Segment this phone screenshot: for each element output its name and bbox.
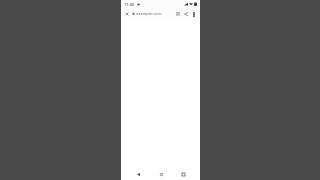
button[interactable]: Recent apps <box>178 169 188 179</box>
button[interactable]: More options <box>190 10 198 18</box>
staticText: 11:06 <box>124 2 135 7</box>
button[interactable]: Share <box>182 10 190 18</box>
button[interactable]: example.com <box>132 9 173 18</box>
staticText: example.com <box>136 11 162 16</box>
button[interactable]: Home <box>156 169 166 179</box>
button[interactable]: Back <box>133 169 143 179</box>
button[interactable]: Bookmark <box>174 10 182 18</box>
button[interactable]: Close <box>123 10 131 18</box>
